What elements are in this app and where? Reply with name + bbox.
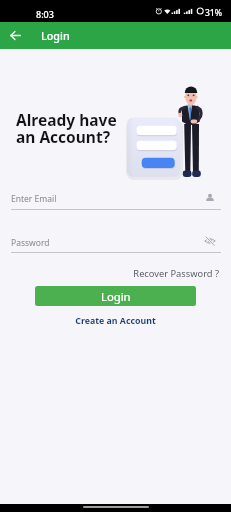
button[interactable]: Show password [203, 234, 217, 248]
staticText: Enter Email [11, 193, 57, 205]
button[interactable]: Recover Password ? [0, 267, 219, 280]
staticText: 8:03 [36, 8, 54, 20]
staticText: Login [101, 289, 131, 304]
button[interactable]: Create an Account [0, 315, 231, 327]
button[interactable]: Login [35, 286, 196, 306]
staticText: 31% [205, 7, 222, 19]
staticText: Already have an Account? [16, 109, 117, 148]
button[interactable]: Account [203, 191, 217, 205]
staticText: Password [11, 237, 50, 249]
button[interactable]: Back [4, 24, 26, 46]
staticText: Login [41, 28, 70, 43]
